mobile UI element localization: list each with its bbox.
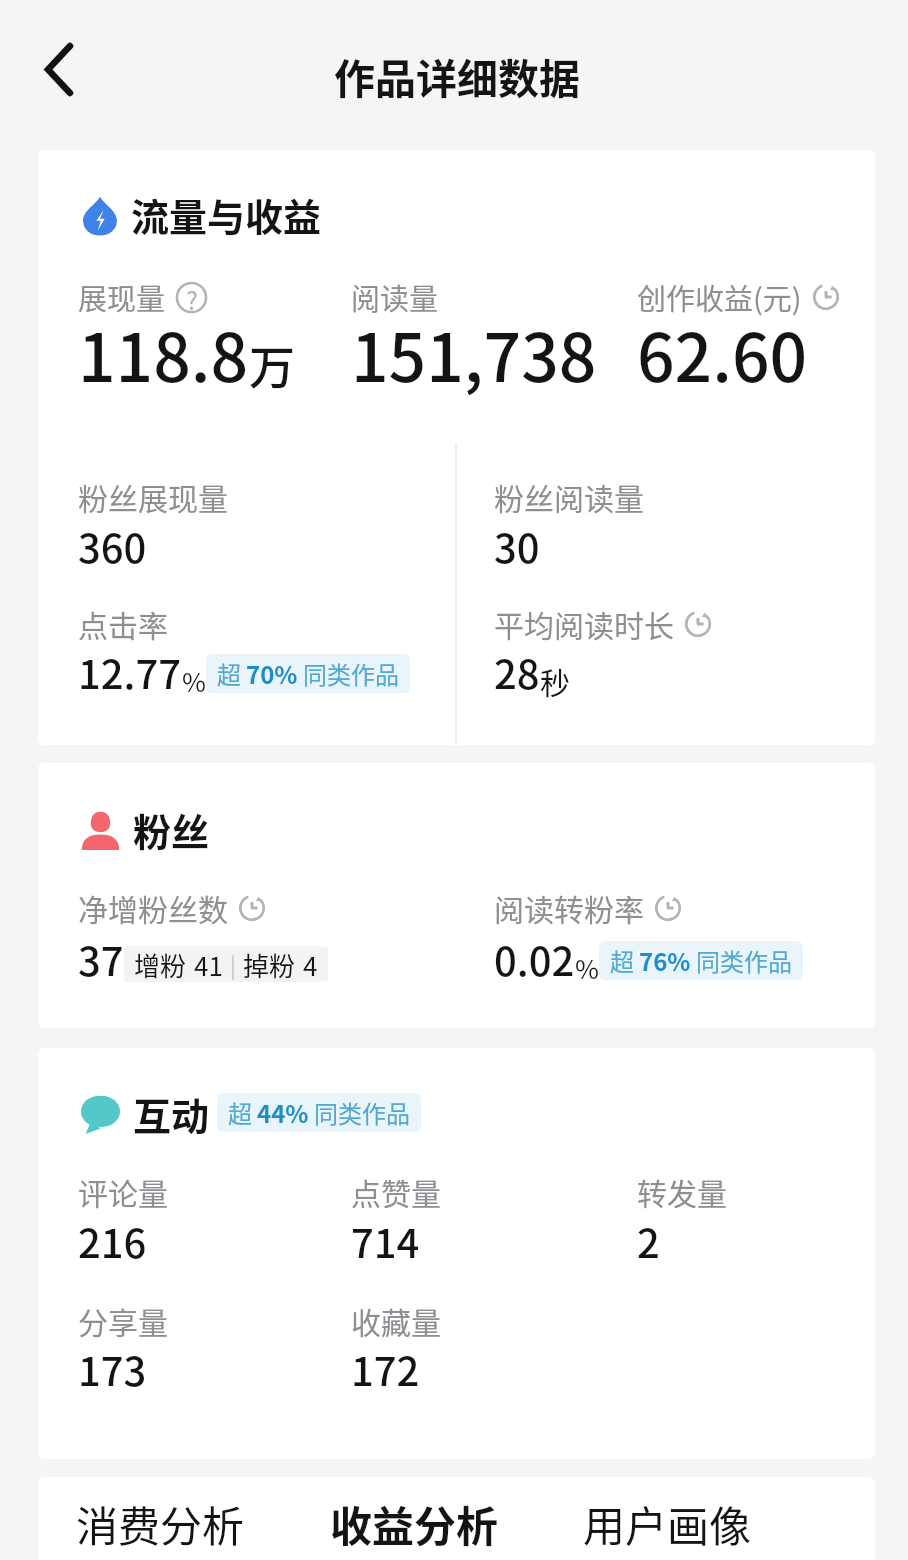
staticText: 阅读量 — [351, 276, 439, 318]
staticText: % — [575, 949, 599, 987]
button[interactable]: 评论量 216 — [78, 1174, 338, 1270]
staticText: 点击率 — [78, 602, 168, 645]
staticText: 360 — [78, 517, 147, 575]
staticText: 44% — [257, 1095, 309, 1130]
staticText: 收益分析 — [330, 1493, 499, 1554]
staticText: % — [182, 662, 206, 700]
staticText: | — [230, 948, 236, 980]
staticText: 28 — [494, 643, 540, 701]
staticText: 转发量 — [637, 1170, 727, 1213]
staticText: 分享量 — [78, 1299, 168, 1342]
button[interactable]: 收益分析 — [330, 1493, 499, 1554]
staticText: 展现量 — [78, 276, 166, 318]
button[interactable]: Back — [19, 29, 99, 109]
staticText: 用户画像 — [583, 1493, 752, 1554]
button[interactable]: 转发量 2 — [637, 1174, 867, 1270]
staticText: 点赞量 — [351, 1170, 441, 1213]
staticText: 超 — [217, 656, 241, 691]
staticText: 作品详细数据 — [334, 46, 580, 105]
staticText: 消费分析 — [76, 1493, 245, 1554]
staticText: 粉丝阅读量 — [494, 475, 644, 518]
staticText: 同类作品 — [314, 1095, 410, 1130]
staticText: 万 — [249, 331, 295, 398]
button[interactable]: 流量与收益 — [82, 188, 322, 243]
button[interactable]: 阅读转粉率 0.02% — [494, 890, 864, 990]
button[interactable]: 展现量 118.8万 — [78, 272, 338, 392]
button[interactable]: 分享量 173 — [78, 1303, 338, 1399]
staticText: 76% — [639, 943, 691, 978]
staticText: 同类作品 — [303, 656, 399, 691]
staticText: 30 — [494, 517, 540, 575]
button[interactable]: 消费分析 — [76, 1493, 245, 1554]
staticText: 172 — [351, 1340, 420, 1398]
staticText: 收藏量 — [351, 1299, 441, 1342]
button[interactable]: 净增粉丝数 37 — [78, 890, 448, 990]
staticText: 粉丝展现量 — [78, 475, 228, 518]
button[interactable]: 创作收益(元) 62.60 — [637, 272, 867, 392]
staticText: 70% — [246, 656, 298, 691]
staticText: 阅读转粉率 — [494, 886, 644, 929]
button[interactable]: Data updated daily — [684, 610, 712, 638]
staticText: 粉丝 — [133, 802, 210, 857]
button[interactable]: 互动 — [81, 1087, 421, 1142]
staticText: 216 — [78, 1212, 147, 1270]
staticText: 151,738 — [351, 305, 597, 401]
staticText: ? — [186, 281, 198, 312]
button[interactable]: Data updated daily — [238, 894, 266, 922]
button[interactable]: Data updated daily — [812, 283, 840, 311]
staticText: 12.77 — [78, 643, 182, 701]
staticText: 173 — [78, 1340, 147, 1398]
button[interactable]: 阅读量 151,738 — [351, 272, 621, 392]
button[interactable]: 用户画像 — [583, 1493, 752, 1554]
staticText: 掉粉 — [243, 946, 296, 982]
staticText: 超 — [610, 943, 634, 978]
staticText: 37 — [78, 930, 124, 988]
button[interactable]: 粉丝展现量 360 — [78, 470, 448, 570]
button[interactable]: 点击率 12.77% — [78, 598, 448, 698]
staticText: 2 — [637, 1212, 660, 1270]
button[interactable]: 点赞量 714 — [351, 1174, 621, 1270]
staticText: 互动 — [133, 1086, 210, 1141]
button[interactable]: Data updated daily — [654, 894, 682, 922]
staticText: 流量与收益 — [131, 187, 322, 242]
staticText: 同类作品 — [696, 943, 792, 978]
staticText: 超 — [228, 1095, 252, 1130]
staticText: 净增粉丝数 — [78, 886, 228, 929]
staticText: 41 — [194, 946, 223, 982]
button[interactable]: 平均阅读时长 28秒 — [494, 598, 864, 698]
staticText: 0.02 — [494, 930, 575, 988]
staticText: 714 — [351, 1212, 420, 1270]
staticText: 创作收益(元) — [637, 276, 802, 318]
staticText: 平均阅读时长 — [494, 602, 674, 645]
button[interactable]: 收藏量 172 — [351, 1303, 621, 1399]
staticText: 118.8 — [78, 305, 249, 401]
button[interactable]: 粉丝阅读量 30 — [494, 470, 864, 570]
staticText: 评论量 — [78, 1170, 168, 1213]
button[interactable]: 粉丝 — [81, 803, 210, 858]
staticText: 增粉 — [134, 946, 187, 982]
button[interactable]: What is impressions — [176, 282, 207, 313]
staticText: 秒 — [540, 659, 570, 702]
staticText: 62.60 — [637, 305, 808, 401]
staticText: 4 — [303, 946, 318, 982]
